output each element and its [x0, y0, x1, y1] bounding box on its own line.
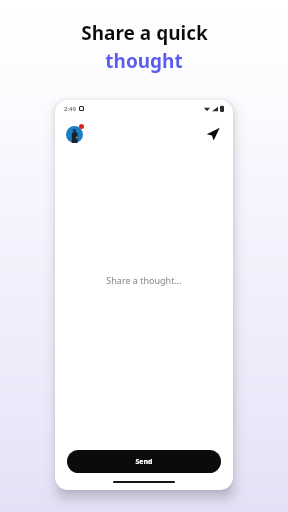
staticText: Send	[135, 457, 153, 467]
button[interactable]: Send	[202, 123, 224, 145]
staticText: Share a thought...	[106, 274, 182, 286]
staticText: thought	[105, 48, 183, 74]
button[interactable]: Profile	[64, 124, 84, 144]
staticText: Share a quick	[81, 20, 208, 46]
staticText: 2:49	[64, 105, 76, 113]
button[interactable]: Send	[67, 450, 221, 473]
